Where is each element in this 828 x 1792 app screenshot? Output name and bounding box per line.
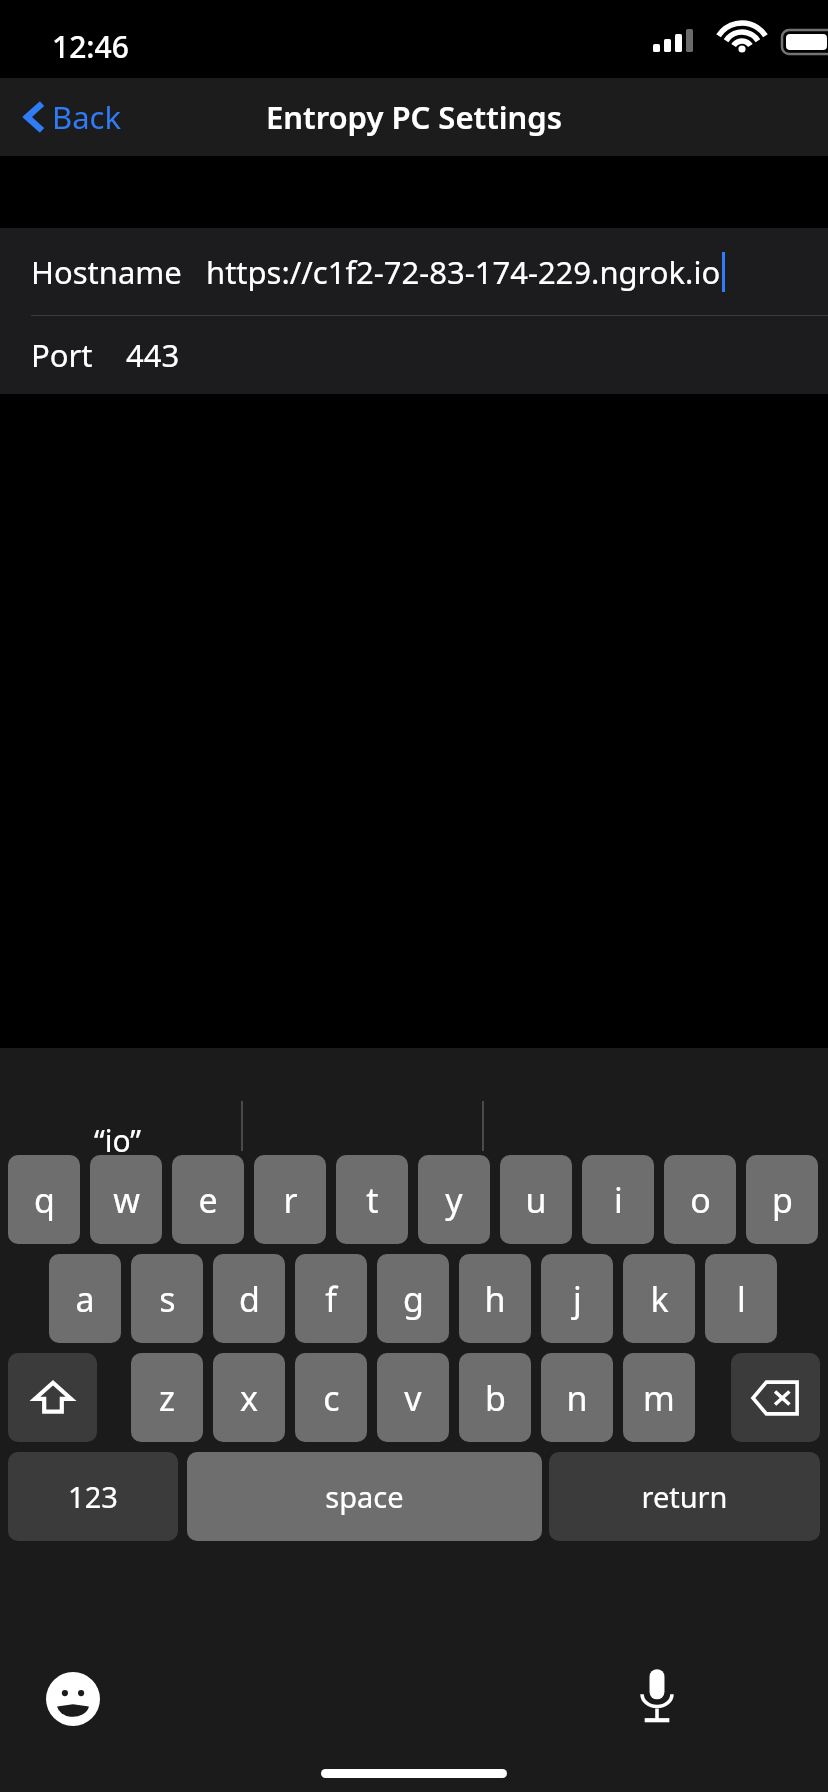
button[interactable]: i <box>582 1155 654 1244</box>
button[interactable]: z <box>131 1353 203 1442</box>
button[interactable]: d <box>213 1254 285 1343</box>
button[interactable]: a <box>49 1254 121 1343</box>
button[interactable]: v <box>377 1353 449 1442</box>
button[interactable]: “io” <box>94 1120 142 1161</box>
button[interactable]: j <box>541 1254 613 1343</box>
staticText: c <box>323 1375 340 1421</box>
button[interactable]: Shift <box>8 1353 97 1442</box>
button[interactable]: o <box>664 1155 736 1244</box>
staticText: b <box>485 1375 506 1421</box>
button[interactable]: m <box>623 1353 695 1442</box>
button[interactable]: l <box>705 1254 777 1343</box>
staticText: 123 <box>68 1477 118 1516</box>
button[interactable]: x <box>213 1353 285 1442</box>
staticText: d <box>239 1276 260 1322</box>
button[interactable]: space <box>187 1452 542 1541</box>
button[interactable]: u <box>500 1155 572 1244</box>
staticText: i <box>614 1177 623 1223</box>
staticText: https://c1f2-72-83-174-229.ngrok.io <box>206 251 721 293</box>
staticText: Entropy PC Settings <box>266 96 562 138</box>
staticText: h <box>484 1276 506 1322</box>
button[interactable]: n <box>541 1353 613 1442</box>
button[interactable]: Emoji keyboard <box>46 1672 100 1726</box>
button[interactable]: Dictation <box>628 1668 686 1726</box>
staticText: 443 <box>126 334 180 376</box>
button[interactable]: Hostname <box>0 228 828 315</box>
button[interactable]: Backspace <box>731 1353 820 1442</box>
staticText: z <box>159 1375 175 1421</box>
staticText: r <box>283 1177 298 1223</box>
staticText: return <box>641 1477 728 1516</box>
staticText: x <box>240 1375 258 1421</box>
staticText: space <box>325 1477 404 1516</box>
button[interactable]: p <box>746 1155 818 1244</box>
button[interactable]: return <box>549 1452 820 1541</box>
staticText: w <box>113 1177 140 1223</box>
staticText: Port <box>31 334 93 376</box>
staticText: a <box>75 1276 95 1322</box>
staticText: m <box>643 1375 675 1421</box>
staticText: n <box>566 1375 588 1421</box>
staticText: u <box>525 1177 547 1223</box>
button[interactable]: y <box>418 1155 490 1244</box>
button[interactable]: s <box>131 1254 203 1343</box>
staticText: t <box>366 1177 379 1223</box>
staticText: s <box>159 1276 176 1322</box>
staticText: l <box>737 1276 746 1322</box>
staticText: Back <box>52 96 121 138</box>
button[interactable]: h <box>459 1254 531 1343</box>
button[interactable]: b <box>459 1353 531 1442</box>
button[interactable]: f <box>295 1254 367 1343</box>
staticText: k <box>650 1276 669 1322</box>
button[interactable]: Port <box>0 316 828 394</box>
staticText: v <box>404 1375 422 1421</box>
button[interactable]: t <box>336 1155 408 1244</box>
staticText: Hostname <box>31 251 182 293</box>
button[interactable]: q <box>8 1155 80 1244</box>
staticText: p <box>772 1177 793 1223</box>
button[interactable]: w <box>90 1155 162 1244</box>
button[interactable]: e <box>172 1155 244 1244</box>
button[interactable]: k <box>623 1254 695 1343</box>
staticText: o <box>690 1177 711 1223</box>
staticText: e <box>198 1177 218 1223</box>
staticText: j <box>573 1276 582 1322</box>
staticText: y <box>445 1177 463 1223</box>
button[interactable]: Back <box>18 88 127 146</box>
button[interactable]: g <box>377 1254 449 1343</box>
staticText: f <box>325 1276 337 1322</box>
button[interactable]: r <box>254 1155 326 1244</box>
staticText: g <box>403 1276 424 1322</box>
staticText: q <box>34 1177 55 1223</box>
button[interactable]: c <box>295 1353 367 1442</box>
button[interactable]: 123 <box>8 1452 178 1541</box>
staticText: 12:46 <box>52 26 129 67</box>
